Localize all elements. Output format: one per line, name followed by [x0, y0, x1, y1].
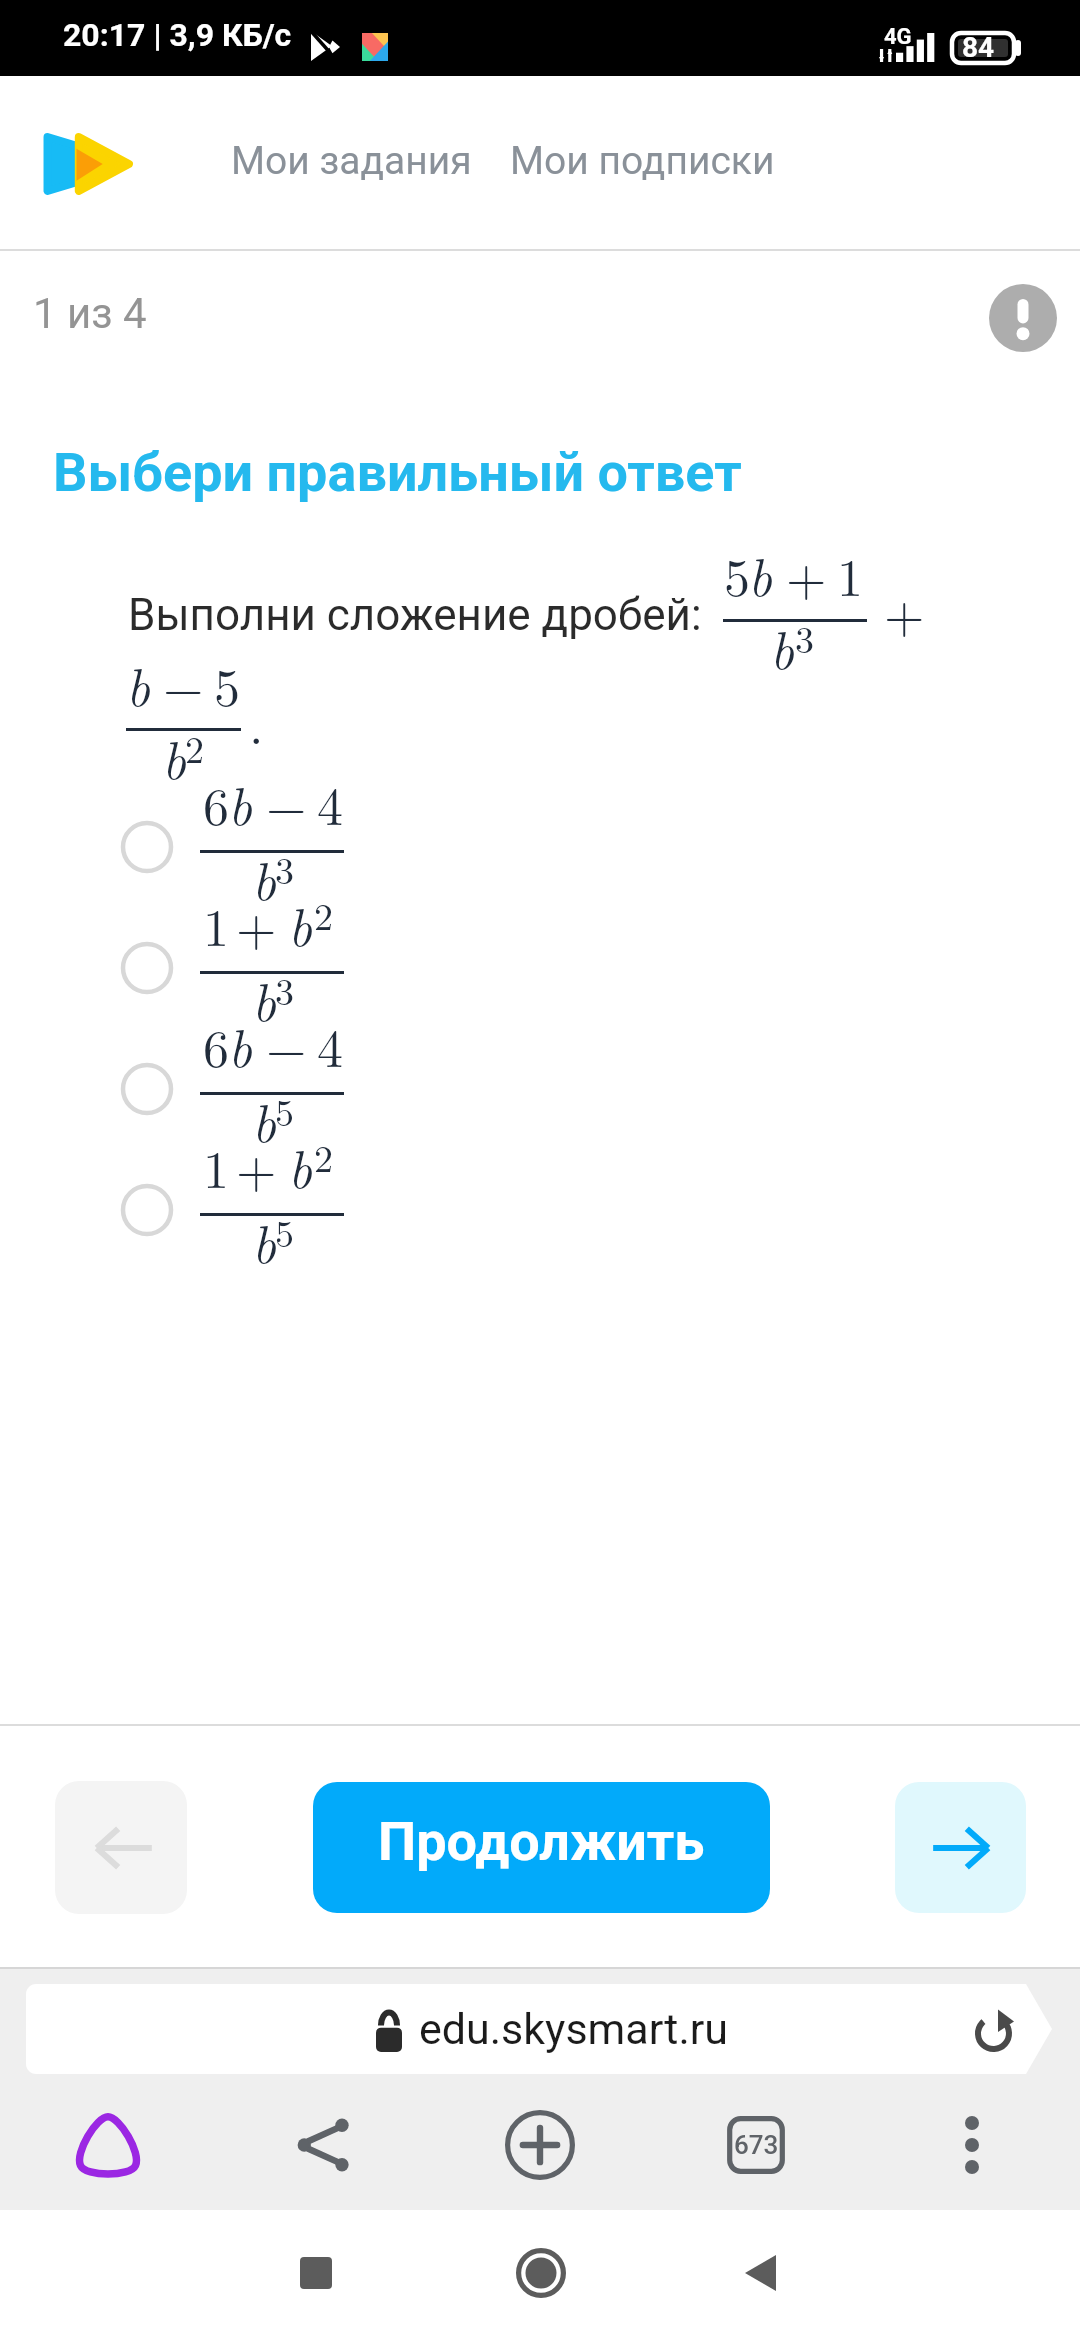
staticText: b: [252, 962, 276, 1036]
staticText: Выбери правильный ответ: [53, 441, 742, 504]
staticText: +: [884, 574, 925, 648]
staticText: 1 из 4: [33, 289, 147, 338]
button[interactable]: Home: [509, 2241, 573, 2305]
staticText: 1: [203, 887, 230, 961]
button[interactable]: New tab: [432, 2097, 648, 2192]
button[interactable]: Report a problem: [989, 284, 1057, 352]
staticText: 2: [314, 1129, 334, 1183]
button[interactable]: Мои подписки: [510, 138, 775, 184]
staticText: Выполни сложение дробей:: [128, 589, 702, 641]
staticText: 5: [214, 647, 241, 721]
button[interactable]: Back: [728, 2241, 792, 2305]
button[interactable]: [0, 790, 1080, 911]
button[interactable]: Next: [895, 1782, 1026, 1913]
button[interactable]: Home: [0, 2097, 216, 2192]
button[interactable]: Skysmart home: [42, 132, 134, 196]
staticText: b: [252, 1204, 276, 1278]
button[interactable]: Tabs: [648, 2097, 864, 2192]
staticText: 4: [317, 1008, 344, 1082]
staticText: 6: [203, 766, 230, 840]
staticText: b: [162, 720, 186, 794]
button[interactable]: Reload: [973, 2008, 1023, 2058]
button[interactable]: Продолжить: [313, 1782, 770, 1913]
button[interactable]: Мои задания: [231, 138, 472, 184]
staticText: 2: [185, 720, 205, 774]
staticText: 6: [203, 1008, 230, 1082]
staticText: b: [770, 610, 794, 684]
staticText: 5: [724, 537, 751, 611]
staticText: 4: [317, 766, 344, 840]
staticText: b: [288, 1129, 312, 1203]
button[interactable]: [0, 911, 1080, 1032]
button[interactable]: Recents: [284, 2241, 348, 2305]
staticText: 3: [275, 841, 295, 895]
staticText: b: [126, 647, 150, 721]
button[interactable]: [0, 1153, 1080, 1274]
staticText: 1: [837, 537, 864, 611]
button[interactable]: Address bar: [26, 1984, 1052, 2074]
button[interactable]: [0, 1032, 1080, 1153]
staticText: b: [228, 766, 252, 840]
staticText: 5: [275, 1083, 295, 1137]
staticText: b: [252, 1083, 276, 1157]
staticText: b: [252, 841, 276, 915]
staticText: .: [249, 685, 264, 759]
staticText: 84: [962, 31, 995, 64]
button[interactable]: Share: [216, 2097, 432, 2192]
staticText: −: [266, 766, 307, 840]
staticText: 673: [734, 2130, 779, 2160]
button[interactable]: Previous: [55, 1781, 187, 1914]
staticText: 3: [275, 962, 295, 1016]
staticText: edu.skysmart.ru: [419, 2004, 729, 2054]
button[interactable]: More options: [864, 2097, 1080, 2192]
staticText: 3: [795, 610, 815, 664]
staticText: 4G: [884, 24, 912, 50]
staticText: +: [236, 887, 277, 961]
staticText: b: [288, 887, 312, 961]
staticText: Мои подписки: [510, 138, 775, 184]
staticText: Мои задания: [231, 138, 472, 184]
staticText: 2: [314, 887, 334, 941]
staticText: 20:17 | 3,9 КБ/с: [63, 16, 292, 54]
staticText: b: [228, 1008, 252, 1082]
staticText: Продолжить: [378, 1810, 705, 1873]
staticText: +: [786, 537, 827, 611]
staticText: 1: [203, 1129, 230, 1203]
staticText: −: [266, 1008, 307, 1082]
staticText: b: [748, 537, 772, 611]
staticText: +: [236, 1129, 277, 1203]
staticText: −: [163, 647, 204, 721]
staticText: 5: [275, 1204, 295, 1258]
